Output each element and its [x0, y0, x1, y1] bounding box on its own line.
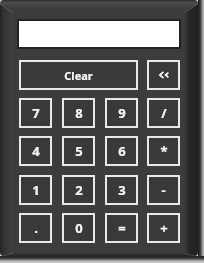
staticText: 3: [118, 181, 126, 199]
button[interactable]: 7: [19, 98, 52, 128]
button[interactable]: 2: [62, 175, 95, 205]
button[interactable]: *: [147, 136, 180, 166]
staticText: -: [161, 181, 166, 199]
staticText: *: [160, 142, 168, 160]
staticText: =: [118, 219, 126, 237]
button[interactable]: 9: [105, 98, 138, 128]
button[interactable]: Backspace: [147, 60, 180, 90]
button[interactable]: -: [147, 175, 180, 205]
button[interactable]: 5: [62, 136, 95, 166]
staticText: 8: [75, 104, 83, 122]
button[interactable]: +: [147, 213, 180, 243]
staticText: 4: [32, 142, 40, 160]
staticText: 7: [32, 104, 40, 122]
button[interactable]: /: [147, 98, 180, 128]
staticText: 1: [32, 181, 40, 199]
staticText: 9: [118, 104, 126, 122]
staticText: 2: [75, 181, 83, 199]
staticText: 5: [75, 142, 83, 160]
button[interactable]: 0: [62, 213, 95, 243]
button[interactable]: .: [19, 213, 52, 243]
staticText: 6: [118, 142, 126, 160]
button[interactable]: 6: [105, 136, 138, 166]
staticText: Clear: [64, 68, 93, 83]
staticText: /: [161, 104, 167, 122]
button[interactable]: 8: [62, 98, 95, 128]
staticText: +: [160, 219, 168, 237]
button[interactable]: 1: [19, 175, 52, 205]
button[interactable]: 4: [19, 136, 52, 166]
staticText: 0: [75, 219, 83, 237]
button[interactable]: =: [105, 213, 138, 243]
button[interactable]: 3: [105, 175, 138, 205]
staticText: .: [34, 219, 38, 237]
button[interactable]: Clear: [19, 60, 138, 90]
